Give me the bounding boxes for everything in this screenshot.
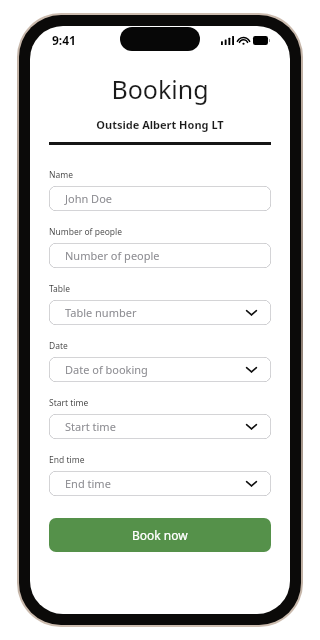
other: Open Table picker [245, 306, 258, 319]
staticText: Number of people [49, 226, 123, 238]
button[interactable]: Number of people [49, 243, 271, 268]
staticText: Start time [49, 397, 89, 409]
staticText: Number of people [65, 248, 160, 263]
staticText: Date [49, 340, 68, 352]
button[interactable]: Date of booking [49, 357, 271, 382]
button[interactable]: Start time [49, 414, 271, 439]
staticText: Outside Albert Hong LT [30, 117, 290, 132]
other: Open Date picker [245, 363, 258, 376]
other: Open Start time picker [245, 420, 258, 433]
other: Open End time picker [245, 477, 258, 490]
staticText: Date of booking [65, 362, 148, 377]
button[interactable]: End time [49, 471, 271, 496]
staticText: 9:41 [52, 32, 76, 48]
button[interactable]: Book now [49, 518, 271, 552]
staticText: End time [65, 476, 111, 491]
staticText: Name [49, 169, 73, 181]
staticText: Start time [65, 419, 116, 434]
staticText: Table number [65, 305, 137, 320]
button[interactable]: John Doe [49, 186, 271, 211]
staticText: Booking [30, 72, 290, 106]
staticText: John Doe [65, 191, 113, 206]
staticText: Table [49, 283, 71, 295]
staticText: Book now [132, 527, 188, 543]
staticText: End time [49, 454, 85, 466]
button[interactable]: Table number [49, 300, 271, 325]
